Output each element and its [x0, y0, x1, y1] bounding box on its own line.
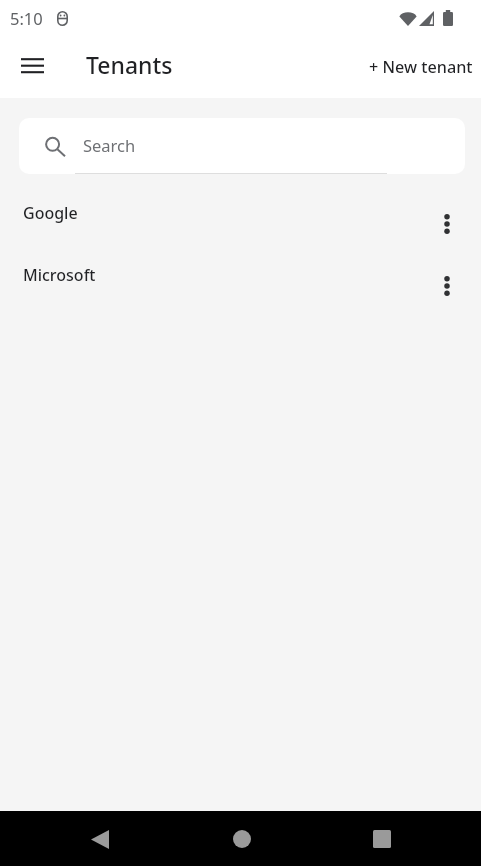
button[interactable]: Google: [0, 194, 481, 256]
button[interactable]: Microsoft: [0, 256, 481, 318]
staticText: Search: [83, 134, 136, 156]
staticText: Google: [23, 202, 78, 224]
staticText: Microsoft: [23, 264, 96, 286]
staticText: Tenants: [86, 49, 173, 80]
button[interactable]: Search: [19, 118, 465, 174]
staticText: + New tenant: [369, 56, 473, 78]
button[interactable]: Open navigation drawer: [8, 44, 56, 92]
button[interactable]: Recent apps: [360, 817, 404, 861]
button[interactable]: Home: [220, 817, 264, 861]
button[interactable]: + New tenant: [361, 48, 481, 89]
button[interactable]: More options for Google: [423, 200, 471, 248]
staticText: 5:10: [10, 7, 43, 29]
button[interactable]: Back: [78, 817, 122, 861]
button[interactable]: More options for Microsoft: [423, 262, 471, 310]
